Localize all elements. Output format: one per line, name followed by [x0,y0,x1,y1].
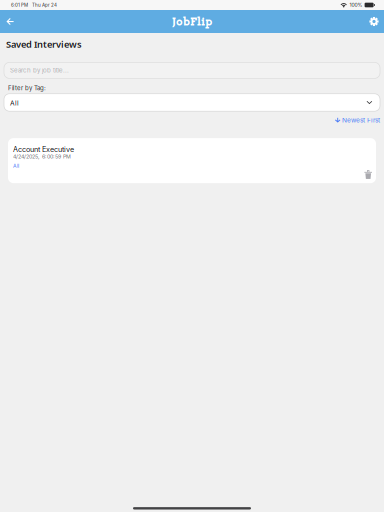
staticText: All [13,163,19,169]
button[interactable]: Back [1,10,19,33]
button[interactable]: Delete [364,145,371,178]
staticText: Thu Apr 24 [32,2,57,8]
button[interactable]: Newest First [335,113,384,127]
button[interactable]: Settings [364,10,382,33]
staticText: 100% [350,2,363,8]
staticText: 6:01 PM [11,2,28,8]
staticText: 4/24/2025, 6:00:59 PM [13,153,71,160]
button[interactable]: All [0,94,384,111]
button[interactable]: Account Executive [0,138,384,183]
staticText: Saved Interviews [6,38,82,50]
staticText: Newest First [342,116,380,124]
staticText: Account Executive [13,145,74,154]
staticText: Filter by Tag: [8,84,46,92]
staticText: Search by job title... [10,67,69,74]
staticText: All [10,99,19,107]
staticText: JobFlip [172,15,212,28]
